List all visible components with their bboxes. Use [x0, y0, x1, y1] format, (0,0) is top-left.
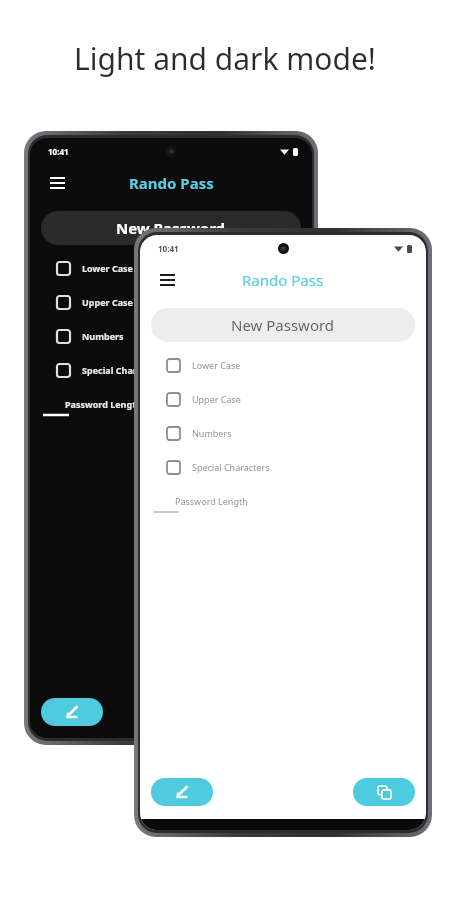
button[interactable]: Numbers: [140, 416, 426, 450]
staticText: Lower Case: [192, 359, 241, 371]
button[interactable]: Lower Case: [30, 251, 312, 285]
staticText: Password Length: [65, 398, 142, 410]
button[interactable]: Lower Case: [140, 348, 426, 382]
button[interactable]: New Password: [151, 308, 415, 342]
staticText: Rando Pass: [242, 270, 324, 290]
button[interactable]: Special Characters: [30, 353, 312, 387]
button[interactable]: Special Characters: [140, 450, 426, 484]
staticText: Light and dark mode!: [74, 38, 376, 79]
button[interactable]: Copy password: [353, 778, 415, 806]
staticText: Special Characters: [192, 461, 270, 473]
button[interactable]: Numbers: [30, 319, 312, 353]
staticText: 10:41: [158, 243, 179, 254]
staticText: New Password: [116, 218, 226, 238]
staticText: Special Characters: [82, 364, 165, 376]
button[interactable]: New Password: [41, 211, 301, 245]
staticText: Lower Case: [82, 262, 133, 274]
staticText: Upper Case: [192, 393, 241, 405]
staticText: Upper Case: [82, 296, 133, 308]
button[interactable]: Upper Case: [30, 285, 312, 319]
staticText: 10:41: [48, 146, 69, 157]
button[interactable]: Upper Case: [140, 382, 426, 416]
staticText: New Password: [231, 315, 335, 335]
staticText: Rando Pass: [129, 173, 214, 193]
button[interactable]: Open navigation menu: [154, 267, 180, 293]
button[interactable]: Edit password: [151, 778, 213, 806]
button[interactable]: Edit password: [41, 698, 103, 726]
staticText: Numbers: [192, 427, 232, 439]
button[interactable]: Open navigation menu: [44, 170, 70, 196]
staticText: Password Length: [175, 495, 248, 507]
staticText: Numbers: [82, 330, 124, 342]
